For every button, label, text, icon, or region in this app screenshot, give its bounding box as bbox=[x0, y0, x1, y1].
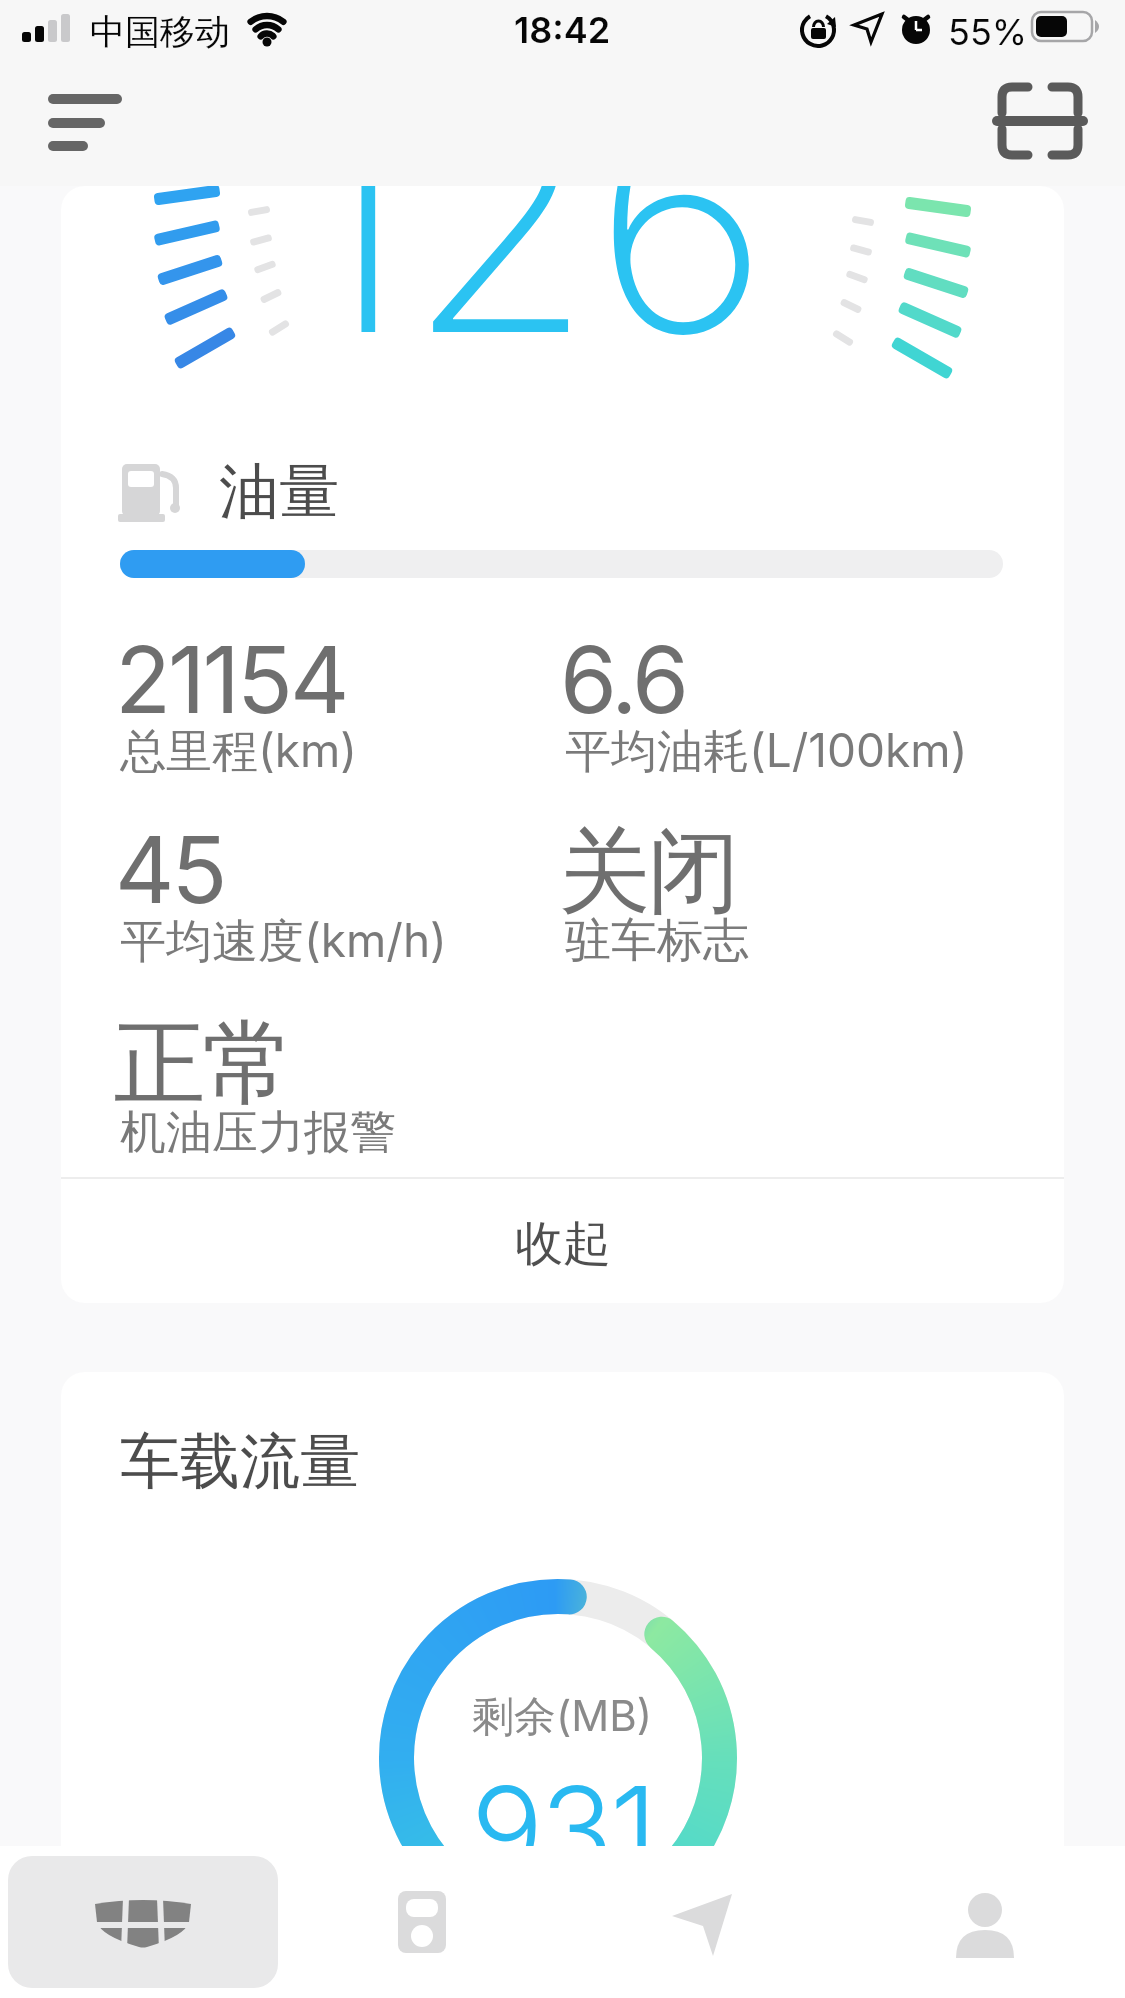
staticText: 正常 bbox=[115, 1006, 293, 1122]
button[interactable] bbox=[352, 1872, 492, 1972]
button[interactable] bbox=[915, 1872, 1055, 1972]
staticText: 油量 bbox=[219, 454, 339, 530]
staticText: 21154 bbox=[115, 624, 347, 735]
staticText: 车载流量 bbox=[120, 1424, 360, 1500]
staticText: 剩余(MB) bbox=[472, 1690, 653, 1743]
staticText: 931 bbox=[471, 1757, 655, 1872]
button[interactable]: 收起 bbox=[61, 1184, 1064, 1303]
staticText: 6.6 bbox=[560, 624, 687, 735]
button[interactable] bbox=[8, 1856, 278, 1988]
staticText: 126 bbox=[292, 186, 770, 379]
staticText: 中国移动 bbox=[90, 10, 230, 54]
staticText: 45 bbox=[115, 814, 225, 925]
staticText: 55% bbox=[948, 10, 1028, 54]
staticText: 收起 bbox=[515, 1214, 611, 1274]
staticText: 驻车标志 bbox=[565, 912, 749, 970]
staticText: 平均速度(km/h) bbox=[120, 912, 447, 970]
button[interactable] bbox=[985, 72, 1095, 172]
button[interactable] bbox=[30, 78, 140, 168]
staticText: 18:42 bbox=[514, 8, 611, 52]
staticText: 平均油耗(L/100km) bbox=[565, 722, 968, 780]
button[interactable] bbox=[633, 1872, 773, 1972]
staticText: 关闭 bbox=[560, 814, 738, 930]
staticText: 机油压力报警 bbox=[120, 1104, 396, 1162]
staticText: 总里程(km) bbox=[120, 722, 358, 780]
